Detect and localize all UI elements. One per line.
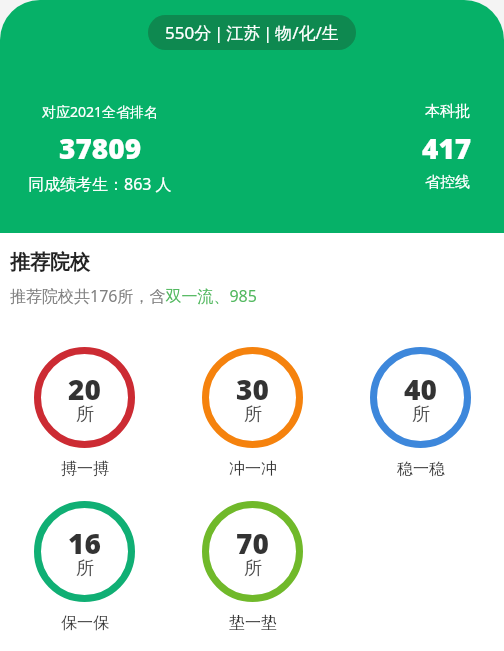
- staticText: 16: [68, 524, 101, 562]
- staticText: 推荐院校: [10, 250, 90, 275]
- staticText: 推荐院校共176所，含双一流、985: [10, 285, 257, 307]
- staticText: 本科批: [425, 102, 470, 121]
- staticText: 垫一垫: [229, 613, 277, 633]
- staticText: 冲一冲: [229, 459, 277, 479]
- staticText: 所: [244, 403, 262, 426]
- staticText: 对应2021全省排名: [42, 102, 159, 121]
- staticText: 省控线: [425, 173, 470, 192]
- staticText: 20: [68, 370, 101, 408]
- staticText: 30: [236, 370, 269, 408]
- button[interactable]: 70: [202, 501, 303, 633]
- staticText: 所: [244, 557, 262, 580]
- button[interactable]: 16: [34, 501, 135, 633]
- staticText: 保一保: [61, 613, 109, 633]
- staticText: 550分 | 江苏 | 物/化/生: [165, 21, 339, 44]
- staticText: 40: [404, 370, 437, 408]
- button[interactable]: 20: [34, 347, 135, 479]
- staticText: 同成绩考生：863 人: [28, 173, 172, 195]
- button[interactable]: 550分 | 江苏 | 物/化/生: [148, 15, 356, 50]
- staticText: 所: [76, 403, 94, 426]
- staticText: 所: [76, 557, 94, 580]
- button[interactable]: 30: [202, 347, 303, 479]
- staticText: 417: [422, 129, 472, 167]
- staticText: 70: [236, 524, 269, 562]
- staticText: 稳一稳: [397, 459, 445, 479]
- staticText: 37809: [59, 129, 142, 167]
- button[interactable]: 40: [370, 347, 471, 479]
- staticText: 搏一搏: [61, 459, 109, 479]
- staticText: 所: [412, 403, 430, 426]
